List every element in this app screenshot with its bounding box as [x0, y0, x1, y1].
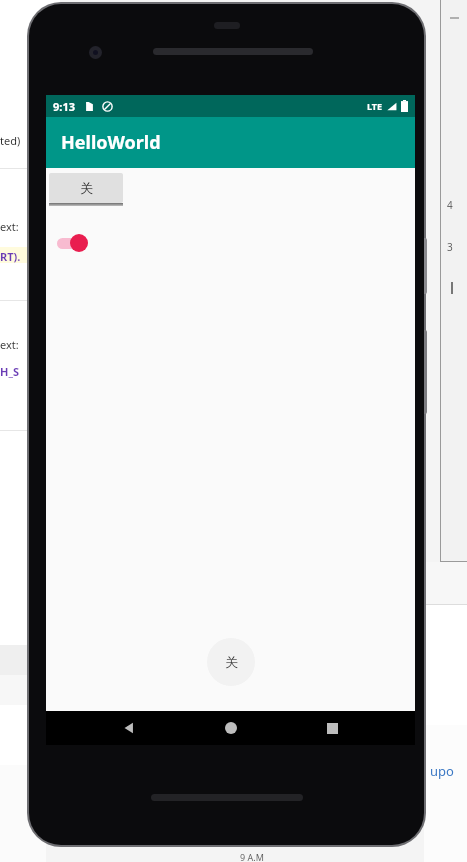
staticText: ext: [0, 219, 19, 234]
staticText: HelloWorld [61, 130, 161, 155]
button[interactable]: 关 [207, 638, 255, 686]
staticText: RT). [0, 249, 21, 264]
staticText: 3 [447, 240, 453, 254]
button[interactable]: Toggle [54, 230, 96, 256]
staticText: upo [430, 762, 454, 780]
staticText: LTE [367, 100, 383, 112]
staticText: ted) [0, 133, 21, 148]
staticText: ext: [0, 337, 19, 352]
staticText: H_S [0, 364, 19, 379]
staticText: 9:13 [53, 99, 75, 114]
staticText: 关 [225, 654, 238, 670]
button[interactable]: Back [111, 711, 147, 745]
button[interactable]: Recent apps [314, 711, 350, 745]
staticText: 4 [447, 198, 453, 212]
button[interactable]: 关 [49, 173, 123, 203]
button[interactable]: Home [213, 711, 249, 745]
staticText: 9 A.M [240, 851, 264, 862]
staticText: 关 [80, 180, 93, 196]
